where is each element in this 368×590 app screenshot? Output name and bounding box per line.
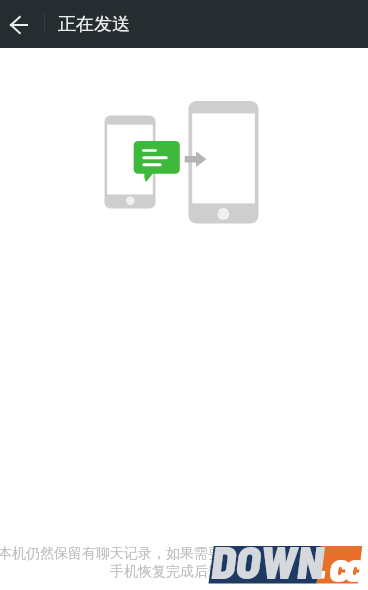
button[interactable]: Back [0,1,37,49]
staticText: DOWN [211,533,368,588]
staticText: c [329,540,359,590]
staticText: 本机仍然保留有聊天记录，如果需要可以在新手机中查看 [0,545,348,563]
staticText: 手机恢复完成后删除即可 [110,563,264,581]
staticText: 正在发送 [58,13,130,36]
staticText: c [344,540,368,590]
